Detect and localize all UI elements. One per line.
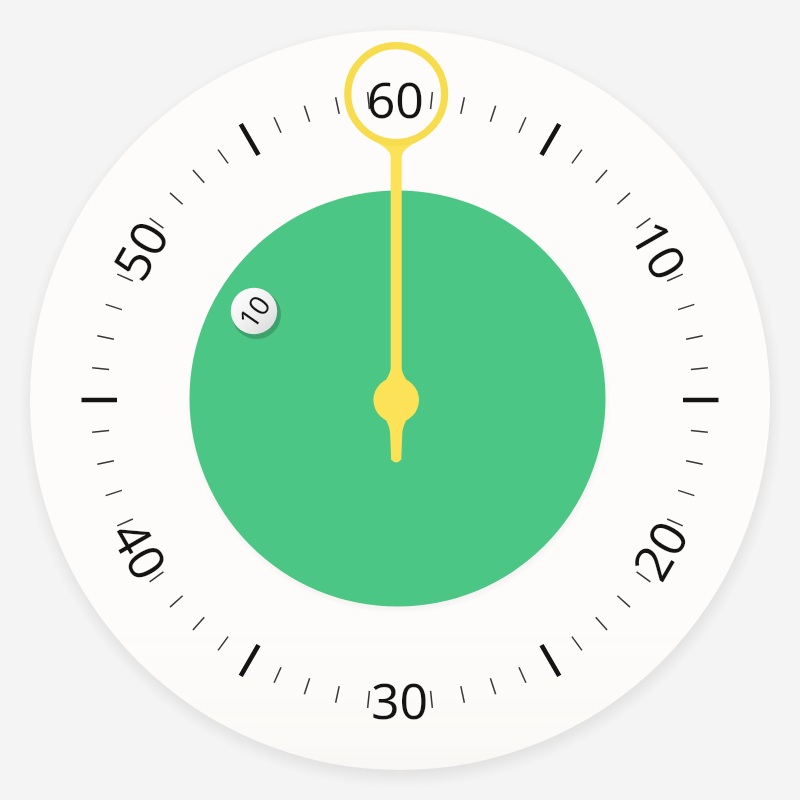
button[interactable]: Alarm marker, 10 minutes [231,288,277,334]
button[interactable]: Set duration, 60 minutes [341,38,452,149]
button[interactable]: Kitchen timer dial, 60 minutes [30,30,770,770]
